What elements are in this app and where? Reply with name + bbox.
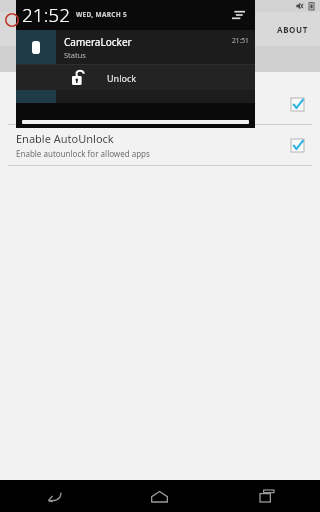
staticText: 21:52 <box>22 2 71 28</box>
staticText: Status <box>64 50 86 60</box>
staticText: 21:51 <box>232 36 249 45</box>
button[interactable]: Enable CamLocker <box>0 84 320 124</box>
button[interactable]: Unlock <box>16 65 255 90</box>
button[interactable]: Enable AutoUnlock <box>0 125 320 165</box>
button[interactable]: Back <box>0 480 106 512</box>
staticText: CameraLocker <box>64 35 132 49</box>
staticText: Unlock <box>107 72 137 84</box>
staticText: ABOUT <box>277 24 308 35</box>
staticText: Enable autounlock for allowed apps <box>16 148 150 159</box>
button[interactable]: Recent apps <box>213 480 320 512</box>
button[interactable]: Home <box>106 480 213 512</box>
button[interactable]: Clear all notifications <box>228 6 249 24</box>
staticText: WED, MARCH 5 <box>76 10 128 19</box>
staticText: Enable CamLocker <box>16 90 112 105</box>
button[interactable]: ABOUT <box>265 18 320 41</box>
staticText: Enable AutoUnlock <box>16 131 114 146</box>
